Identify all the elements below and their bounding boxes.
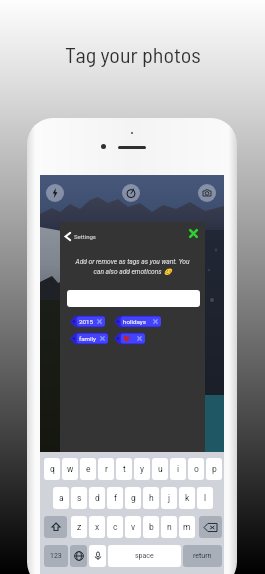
staticText: t — [123, 464, 126, 474]
staticText: u — [158, 464, 163, 474]
staticText: l — [204, 493, 207, 503]
button[interactable]: z — [71, 516, 87, 538]
button[interactable]: Camera control — [198, 184, 216, 202]
button[interactable]: return — [183, 545, 222, 567]
button[interactable]: m — [179, 516, 195, 538]
button[interactable]: y — [134, 458, 150, 480]
staticText: y — [140, 464, 145, 474]
staticText: c — [113, 522, 118, 532]
button[interactable]: Back — [63, 227, 97, 245]
button[interactable]: holidays — [114, 315, 161, 328]
staticText: q — [50, 464, 55, 474]
button[interactable]: 2015 — [70, 315, 105, 328]
staticText: g — [131, 493, 136, 503]
staticText: b — [149, 522, 154, 532]
button[interactable] — [114, 332, 145, 345]
button[interactable]: b — [143, 516, 159, 538]
staticText: e — [86, 464, 91, 474]
button[interactable]: o — [188, 458, 204, 480]
button[interactable]: u — [152, 458, 168, 480]
staticText: v — [131, 522, 136, 532]
staticText: f — [114, 493, 117, 503]
staticText: space — [135, 552, 154, 560]
button[interactable]: Dictate — [89, 545, 106, 567]
button[interactable]: space — [108, 545, 181, 567]
button[interactable]: Switch keyboard — [70, 545, 87, 567]
staticText: return — [193, 552, 212, 560]
staticText: p — [212, 464, 217, 474]
button[interactable]: t — [116, 458, 132, 480]
button[interactable]: Close — [186, 226, 201, 241]
staticText: j — [168, 493, 171, 503]
button[interactable]: s — [71, 487, 87, 509]
button[interactable]: v — [125, 516, 141, 538]
staticText: x — [95, 522, 100, 532]
staticText: i — [177, 464, 180, 474]
button[interactable]: j — [161, 487, 177, 509]
button[interactable]: g — [125, 487, 141, 509]
staticText: Tag your photos — [65, 41, 201, 67]
staticText: 123 — [50, 552, 62, 560]
staticText: z — [77, 522, 82, 532]
staticText: holidays — [123, 318, 146, 325]
staticText: Add or remove as tags as you want. You c… — [63, 258, 202, 276]
button[interactable]: f — [107, 487, 123, 509]
button[interactable]: family — [70, 332, 108, 345]
button[interactable]: e — [80, 458, 96, 480]
button[interactable]: r — [98, 458, 114, 480]
button[interactable]: n — [161, 516, 177, 538]
button[interactable]: i — [170, 458, 186, 480]
button[interactable]: Backspace — [199, 516, 222, 538]
button[interactable] — [67, 290, 200, 307]
button[interactable]: l — [197, 487, 213, 509]
button[interactable]: h — [143, 487, 159, 509]
staticText: Settings — [74, 233, 96, 240]
staticText: a — [59, 493, 64, 503]
button[interactable]: p — [206, 458, 222, 480]
staticText: n — [167, 522, 172, 532]
button[interactable]: Camera control — [122, 184, 140, 202]
staticText: 2015 — [79, 318, 93, 325]
staticText: w — [67, 464, 74, 474]
staticText: s — [77, 493, 82, 503]
button[interactable]: q — [44, 458, 60, 480]
staticText: family — [79, 335, 96, 342]
staticText: o — [194, 464, 199, 474]
staticText: k — [185, 493, 190, 503]
staticText: r — [105, 464, 108, 474]
button[interactable]: 123 — [44, 545, 68, 567]
button[interactable]: c — [107, 516, 123, 538]
button[interactable]: k — [179, 487, 195, 509]
button[interactable]: d — [89, 487, 105, 509]
staticText: h — [149, 493, 154, 503]
button[interactable]: a — [53, 487, 69, 509]
staticText: d — [95, 493, 100, 503]
staticText: m — [183, 522, 191, 532]
button[interactable]: Shift — [44, 516, 67, 538]
button[interactable]: Camera control — [46, 184, 64, 202]
button[interactable]: w — [62, 458, 78, 480]
button[interactable]: x — [89, 516, 105, 538]
